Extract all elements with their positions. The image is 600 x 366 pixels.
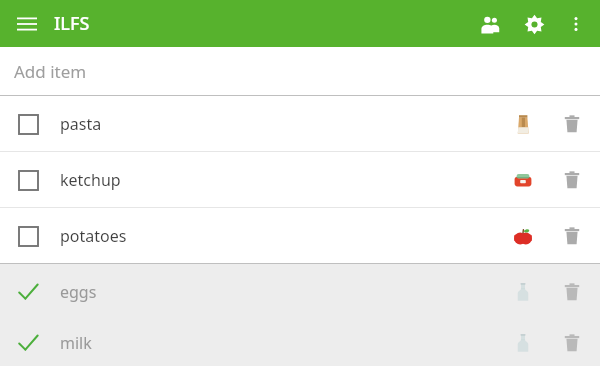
staticText: eggs <box>60 281 97 303</box>
button[interactable]: Check potatoes <box>0 208 600 263</box>
button[interactable]: Check pasta <box>10 106 46 142</box>
staticText: potatoes <box>60 225 127 247</box>
button[interactable]: Add item <box>0 47 600 95</box>
button[interactable]: Delete eggs <box>552 272 592 312</box>
staticText: ketchup <box>60 169 121 191</box>
button[interactable]: Uncheck milk <box>10 325 46 361</box>
button[interactable]: Uncheck eggs <box>10 274 46 310</box>
button[interactable]: Share list with people <box>468 2 512 46</box>
button[interactable]: Check ketchup <box>0 152 600 207</box>
staticText: pasta <box>60 113 102 135</box>
button[interactable]: Delete pasta <box>552 104 592 144</box>
button[interactable]: Check pasta <box>0 96 600 151</box>
button[interactable]: Settings <box>512 2 556 46</box>
staticText: milk <box>60 332 92 354</box>
button[interactable]: Uncheck milk <box>0 319 600 366</box>
button[interactable]: Uncheck eggs <box>0 264 600 319</box>
button[interactable]: Delete ketchup <box>552 160 592 200</box>
staticText: ILFS <box>54 11 90 36</box>
button[interactable]: Delete potatoes <box>552 216 592 256</box>
button[interactable]: Check potatoes <box>10 218 46 254</box>
button[interactable]: Open navigation menu <box>8 5 46 43</box>
button[interactable]: More options <box>556 4 596 44</box>
button[interactable]: Delete milk <box>552 323 592 363</box>
staticText: Add item <box>14 60 87 83</box>
button[interactable]: Check ketchup <box>10 162 46 198</box>
